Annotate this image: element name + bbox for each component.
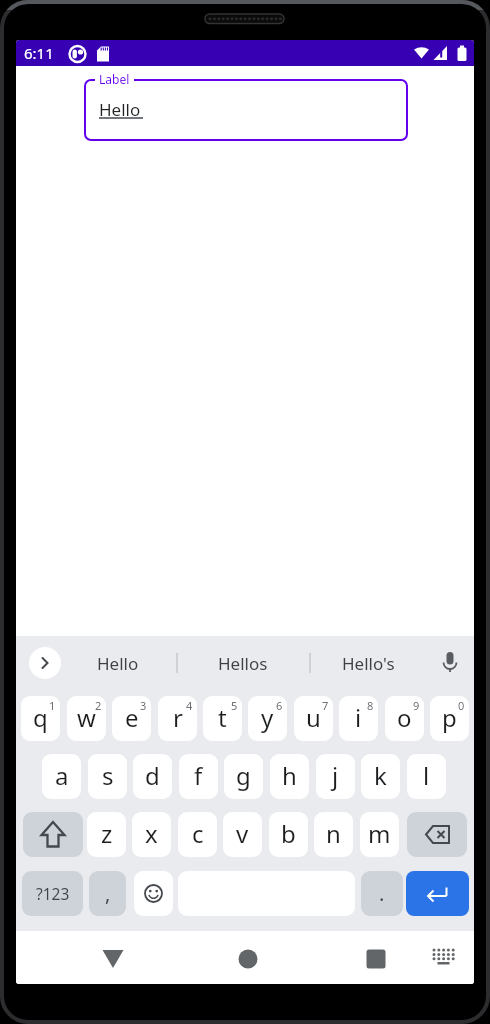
button[interactable]: Hello <box>84 79 408 141</box>
button[interactable]: q <box>21 696 60 741</box>
staticText: v <box>236 817 249 850</box>
staticText: ?123 <box>36 883 70 904</box>
button[interactable]: w <box>67 696 106 741</box>
button[interactable]: Hello's <box>313 647 423 679</box>
button[interactable]: , <box>89 871 126 916</box>
staticText: o <box>397 701 412 734</box>
staticText: x <box>145 817 158 850</box>
staticText: 7 <box>322 698 329 713</box>
staticText: e <box>125 701 139 734</box>
staticText: a <box>55 759 69 792</box>
button[interactable]: g <box>224 754 263 799</box>
staticText: 8 <box>367 698 374 713</box>
button[interactable]: a <box>42 754 81 799</box>
staticText: Label <box>99 71 130 87</box>
button[interactable]: s <box>88 754 127 799</box>
button[interactable]: p <box>430 696 469 741</box>
button[interactable]: d <box>133 754 172 799</box>
staticText: Hello's <box>342 652 395 675</box>
button[interactable] <box>23 812 83 857</box>
button[interactable] <box>134 871 173 916</box>
staticText: y <box>261 701 274 734</box>
button[interactable]: b <box>269 812 308 857</box>
staticText: b <box>281 817 296 850</box>
staticText: d <box>145 759 160 792</box>
staticText: f <box>194 759 203 792</box>
staticText: t <box>218 701 227 734</box>
button[interactable] <box>430 947 460 969</box>
staticText: u <box>306 701 321 734</box>
staticText: 3 <box>140 698 147 713</box>
button[interactable]: t <box>203 696 242 741</box>
staticText: r <box>173 701 183 734</box>
button[interactable] <box>91 947 135 973</box>
staticText: s <box>102 759 114 792</box>
button[interactable]: u <box>294 696 333 741</box>
button[interactable]: j <box>316 754 355 799</box>
staticText: Hello <box>99 98 141 121</box>
staticText: i <box>355 701 362 734</box>
staticText: h <box>282 759 297 792</box>
staticText: 6:11 <box>24 43 54 63</box>
staticText: k <box>374 759 387 792</box>
staticText: . <box>379 880 385 907</box>
staticText: n <box>326 817 341 850</box>
staticText: , <box>105 880 111 907</box>
staticText: 0 <box>458 698 465 713</box>
button[interactable]: l <box>407 754 446 799</box>
staticText: 4 <box>186 698 193 713</box>
button[interactable] <box>406 871 469 916</box>
button[interactable]: Hellos <box>188 647 298 679</box>
staticText: w <box>77 701 96 734</box>
button[interactable]: x <box>132 812 171 857</box>
staticText: l <box>423 759 430 792</box>
staticText: j <box>332 759 339 792</box>
staticText: z <box>101 817 113 850</box>
button[interactable]: m <box>360 812 399 857</box>
button[interactable] <box>29 647 61 679</box>
staticText: 1 <box>49 698 56 713</box>
staticText: 9 <box>413 698 420 713</box>
button[interactable] <box>226 947 270 973</box>
staticText: 6 <box>276 698 283 713</box>
button[interactable]: o <box>385 696 424 741</box>
button[interactable]: y <box>248 696 287 741</box>
button[interactable]: Hello <box>63 647 173 679</box>
button[interactable]: i <box>339 696 378 741</box>
staticText: g <box>236 759 251 792</box>
staticText: 2 <box>95 698 102 713</box>
button[interactable]: z <box>87 812 126 857</box>
staticText: 5 <box>231 698 238 713</box>
button[interactable]: . <box>361 871 403 916</box>
staticText: c <box>192 817 204 850</box>
button[interactable]: f <box>179 754 218 799</box>
staticText: p <box>442 701 457 734</box>
button[interactable]: k <box>361 754 400 799</box>
button[interactable]: n <box>314 812 353 857</box>
button[interactable]: e <box>112 696 151 741</box>
staticText: q <box>33 701 48 734</box>
button[interactable]: h <box>270 754 309 799</box>
button[interactable] <box>354 947 398 973</box>
staticText: m <box>368 817 391 850</box>
button[interactable]: r <box>158 696 197 741</box>
button[interactable]: c <box>178 812 217 857</box>
staticText: Hello <box>97 652 139 675</box>
button[interactable] <box>407 812 467 857</box>
button[interactable]: v <box>223 812 262 857</box>
staticText: Hellos <box>218 652 268 675</box>
button[interactable]: ?123 <box>22 871 83 916</box>
